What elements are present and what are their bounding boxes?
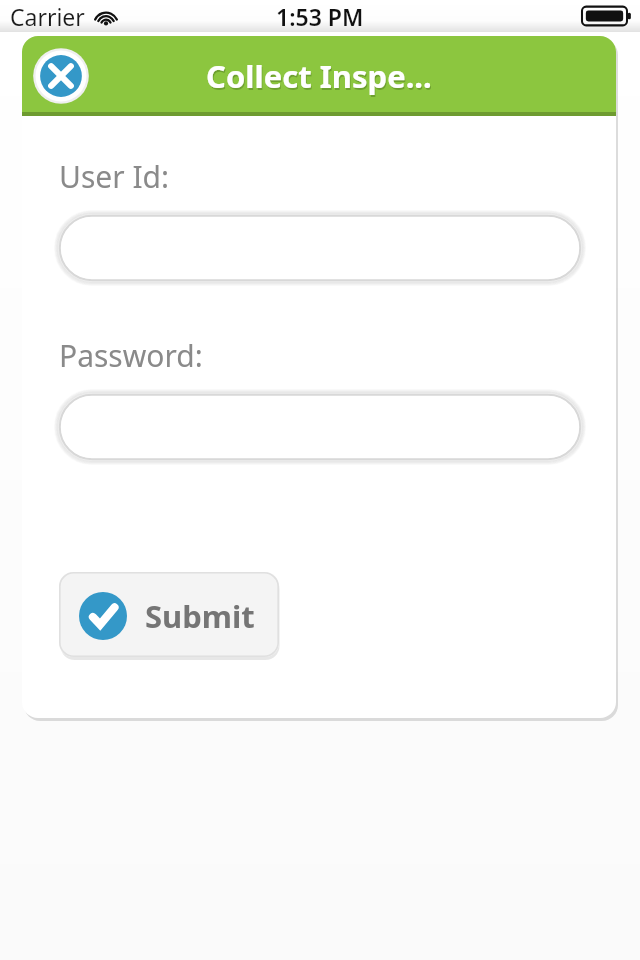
staticText: Password: <box>59 335 203 376</box>
staticText: Carrier <box>10 1 85 32</box>
staticText: Collect Inspe... <box>207 57 433 99</box>
button[interactable]: Close <box>32 47 90 105</box>
staticText: User Id: <box>59 156 170 197</box>
button[interactable] <box>59 394 581 460</box>
staticText: Submit <box>145 595 255 637</box>
staticText: 1:53 PM <box>276 1 364 32</box>
button[interactable]: Submit <box>59 572 281 660</box>
staticText: Collect Inspe... <box>206 55 432 97</box>
button[interactable] <box>59 215 581 281</box>
